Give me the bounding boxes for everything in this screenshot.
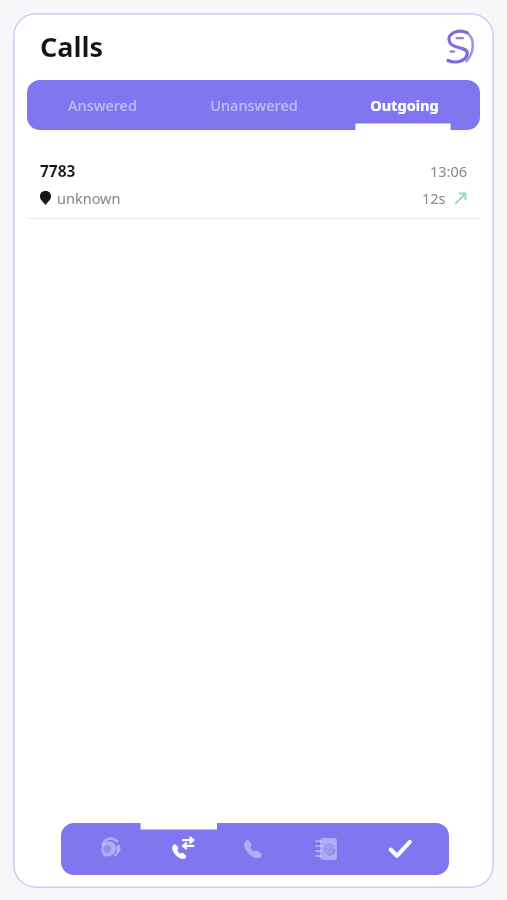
staticText: 7783 <box>40 160 76 181</box>
button[interactable]: 7783 <box>13 154 494 219</box>
button[interactable]: Dial <box>232 826 278 872</box>
button[interactable]: Support agent <box>87 826 133 872</box>
staticText: 13:06 <box>430 161 468 181</box>
staticText: unknown <box>57 188 121 208</box>
staticText: Unanswered <box>210 95 298 115</box>
button[interactable]: Answered <box>27 80 178 130</box>
staticText: Answered <box>68 95 137 115</box>
button[interactable]: Unanswered <box>178 80 329 130</box>
button[interactable]: Brand logo <box>437 26 479 68</box>
button[interactable]: Call transfer <box>160 826 206 872</box>
button[interactable]: Contacts <box>304 826 350 872</box>
button[interactable]: Confirm <box>377 826 423 872</box>
staticText: Outgoing <box>370 95 439 115</box>
staticText: Calls <box>40 28 104 65</box>
staticText: 12s <box>422 188 446 208</box>
button[interactable]: Outgoing <box>329 80 480 130</box>
